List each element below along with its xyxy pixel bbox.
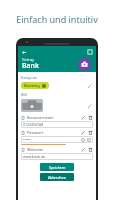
- button[interactable]: Zurück: [21, 49, 28, 56]
- button[interactable]: Mehr: [87, 49, 93, 55]
- button[interactable]: Benutzername bearbeiten: [81, 115, 86, 120]
- staticText: Benutzername: [27, 115, 54, 120]
- staticText: www.bank.de: [23, 154, 46, 159]
- button[interactable]: Bearbeiten: [87, 83, 93, 89]
- staticText: Eintrag: [22, 57, 34, 62]
- button[interactable]: Bild: [21, 99, 43, 112]
- staticText: Kategorie: [21, 75, 37, 80]
- staticText: ••••••: [23, 137, 31, 142]
- button[interactable]: Speichern: [40, 163, 74, 171]
- staticText: Bank: [22, 61, 39, 71]
- button[interactable]: Webseite löschen: [88, 147, 93, 152]
- button[interactable]: ••••••: [21, 136, 93, 143]
- button[interactable]: Passwort bearbeiten: [81, 130, 86, 135]
- staticText: Abbrechen: [48, 175, 66, 180]
- button[interactable]: Abbrechen: [40, 173, 74, 181]
- staticText: Einfach und intuitiv: [16, 13, 98, 25]
- staticText: Speichern: [49, 165, 66, 170]
- button[interactable]: www.bank.de: [21, 153, 93, 160]
- button[interactable]: Benutzername löschen: [88, 115, 93, 120]
- button[interactable]: Webseite bearbeiten: [81, 147, 86, 152]
- staticText: 01234567#8: [23, 122, 44, 127]
- staticText: Banking: [24, 83, 40, 88]
- button[interactable]: Banking: [21, 82, 49, 89]
- staticText: Webseite: [27, 147, 44, 152]
- staticText: Passwort: [27, 130, 44, 135]
- button[interactable]: Symbol: [78, 58, 91, 71]
- staticText: Bild: [21, 92, 28, 97]
- button[interactable]: Passwort löschen: [88, 130, 93, 135]
- button[interactable]: 01234567#8: [21, 121, 93, 128]
- button[interactable]: Bild bearbeiten: [87, 103, 93, 109]
